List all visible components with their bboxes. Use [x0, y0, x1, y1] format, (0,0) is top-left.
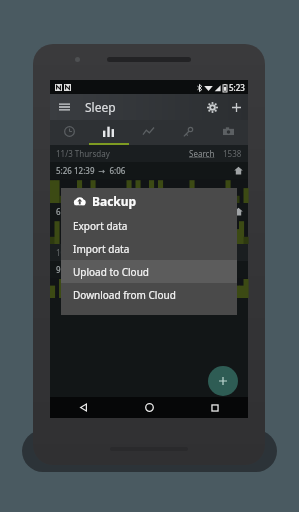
button[interactable]	[50, 220, 248, 244]
staticText: Import data	[73, 242, 130, 256]
staticText: Upload to Cloud	[73, 265, 149, 279]
button[interactable]: Camera	[208, 120, 248, 143]
button[interactable]: Home	[116, 397, 182, 418]
button[interactable]: Settings	[200, 95, 224, 119]
staticText: 11/3 Thursday	[56, 148, 110, 159]
staticText: Download from Cloud	[73, 288, 176, 302]
button[interactable]: Export data	[61, 214, 237, 237]
staticText: Sleep	[85, 99, 116, 115]
staticText: 1538	[223, 148, 242, 159]
staticText: 10/31 Monday	[56, 247, 110, 258]
button[interactable]: Graphs	[89, 120, 128, 143]
button[interactable]: Alarms	[50, 120, 89, 143]
staticText: Export data	[73, 219, 128, 233]
button[interactable]: Recent apps	[182, 397, 248, 418]
staticText: 9:32 10:24 → 8:02	[56, 264, 126, 275]
staticText: Backup	[92, 193, 137, 209]
button[interactable]: Search	[189, 148, 215, 159]
button[interactable]	[50, 179, 248, 203]
staticText: 5:26 12:39 → 6:06	[56, 165, 126, 176]
button[interactable]: Trends	[128, 120, 168, 143]
button[interactable]: Import data	[61, 237, 237, 260]
button[interactable]: Download from Cloud	[61, 283, 237, 306]
staticText: 6:37 12:46 → 7:23	[56, 206, 126, 217]
staticText: 5:23	[229, 82, 245, 93]
button[interactable]: Add	[208, 366, 238, 396]
button[interactable]: 10/31 Monday	[50, 244, 248, 261]
button[interactable]: 11/3 Thursday	[50, 145, 248, 162]
button[interactable]: Back	[50, 397, 116, 418]
button[interactable]: Navigation menu	[53, 96, 75, 118]
button[interactable]: Noise	[168, 120, 208, 143]
button[interactable]: 6:37 12:46 → 7:23	[50, 203, 248, 220]
button[interactable]: 5:26 12:39 → 6:06	[50, 162, 248, 179]
button[interactable]	[50, 278, 248, 298]
button[interactable]: Add	[224, 95, 248, 119]
button[interactable]: 9:32 10:24 → 8:02	[50, 261, 248, 278]
button[interactable]: Upload to Cloud	[61, 260, 237, 283]
